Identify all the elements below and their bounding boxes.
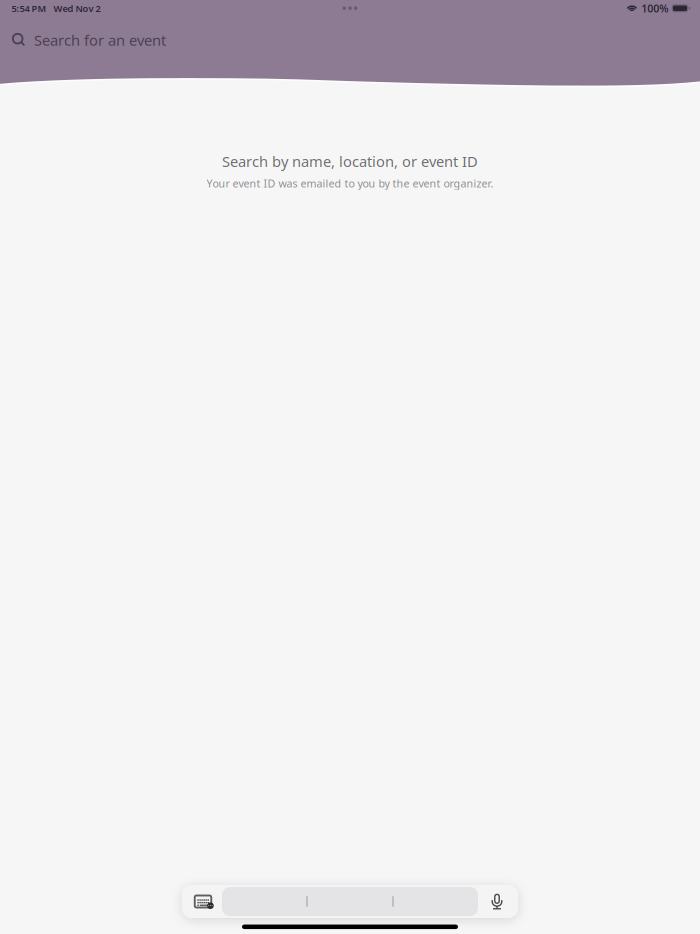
button[interactable]: Text field bbox=[222, 887, 478, 916]
staticText: Search by name, location, or event ID bbox=[222, 152, 478, 171]
button[interactable]: Dictate bbox=[477, 885, 517, 918]
staticText: Wed Nov 2 bbox=[54, 2, 101, 15]
button[interactable]: Search for an event bbox=[12, 23, 652, 57]
staticText: 100% bbox=[641, 1, 668, 15]
staticText: Your event ID was emailed to you by the … bbox=[206, 176, 493, 190]
staticText: Search for an event bbox=[34, 30, 166, 50]
button[interactable]: Show keyboard bbox=[183, 885, 223, 918]
staticText: 5:54 PM bbox=[12, 2, 47, 15]
